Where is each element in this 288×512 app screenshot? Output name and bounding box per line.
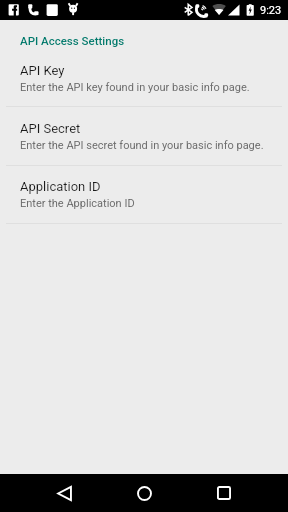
staticText: Enter the API secret found in your basic… [20,139,264,152]
staticText: 9:23 [260,4,282,17]
button[interactable]: API Secret [0,106,288,164]
staticText: API Secret [20,121,81,136]
button[interactable]: API Key [0,48,288,106]
staticText: API Key [20,63,65,78]
staticText: Enter the Application ID [20,197,135,210]
staticText: Application ID [20,179,101,194]
button[interactable]: Home [120,474,168,512]
staticText: API Access Settings [20,34,125,47]
staticText: Enter the API key found in your basic in… [20,81,250,94]
button[interactable]: Recents [200,474,248,512]
button[interactable]: Application ID [0,164,288,222]
button[interactable]: Back [40,474,88,512]
